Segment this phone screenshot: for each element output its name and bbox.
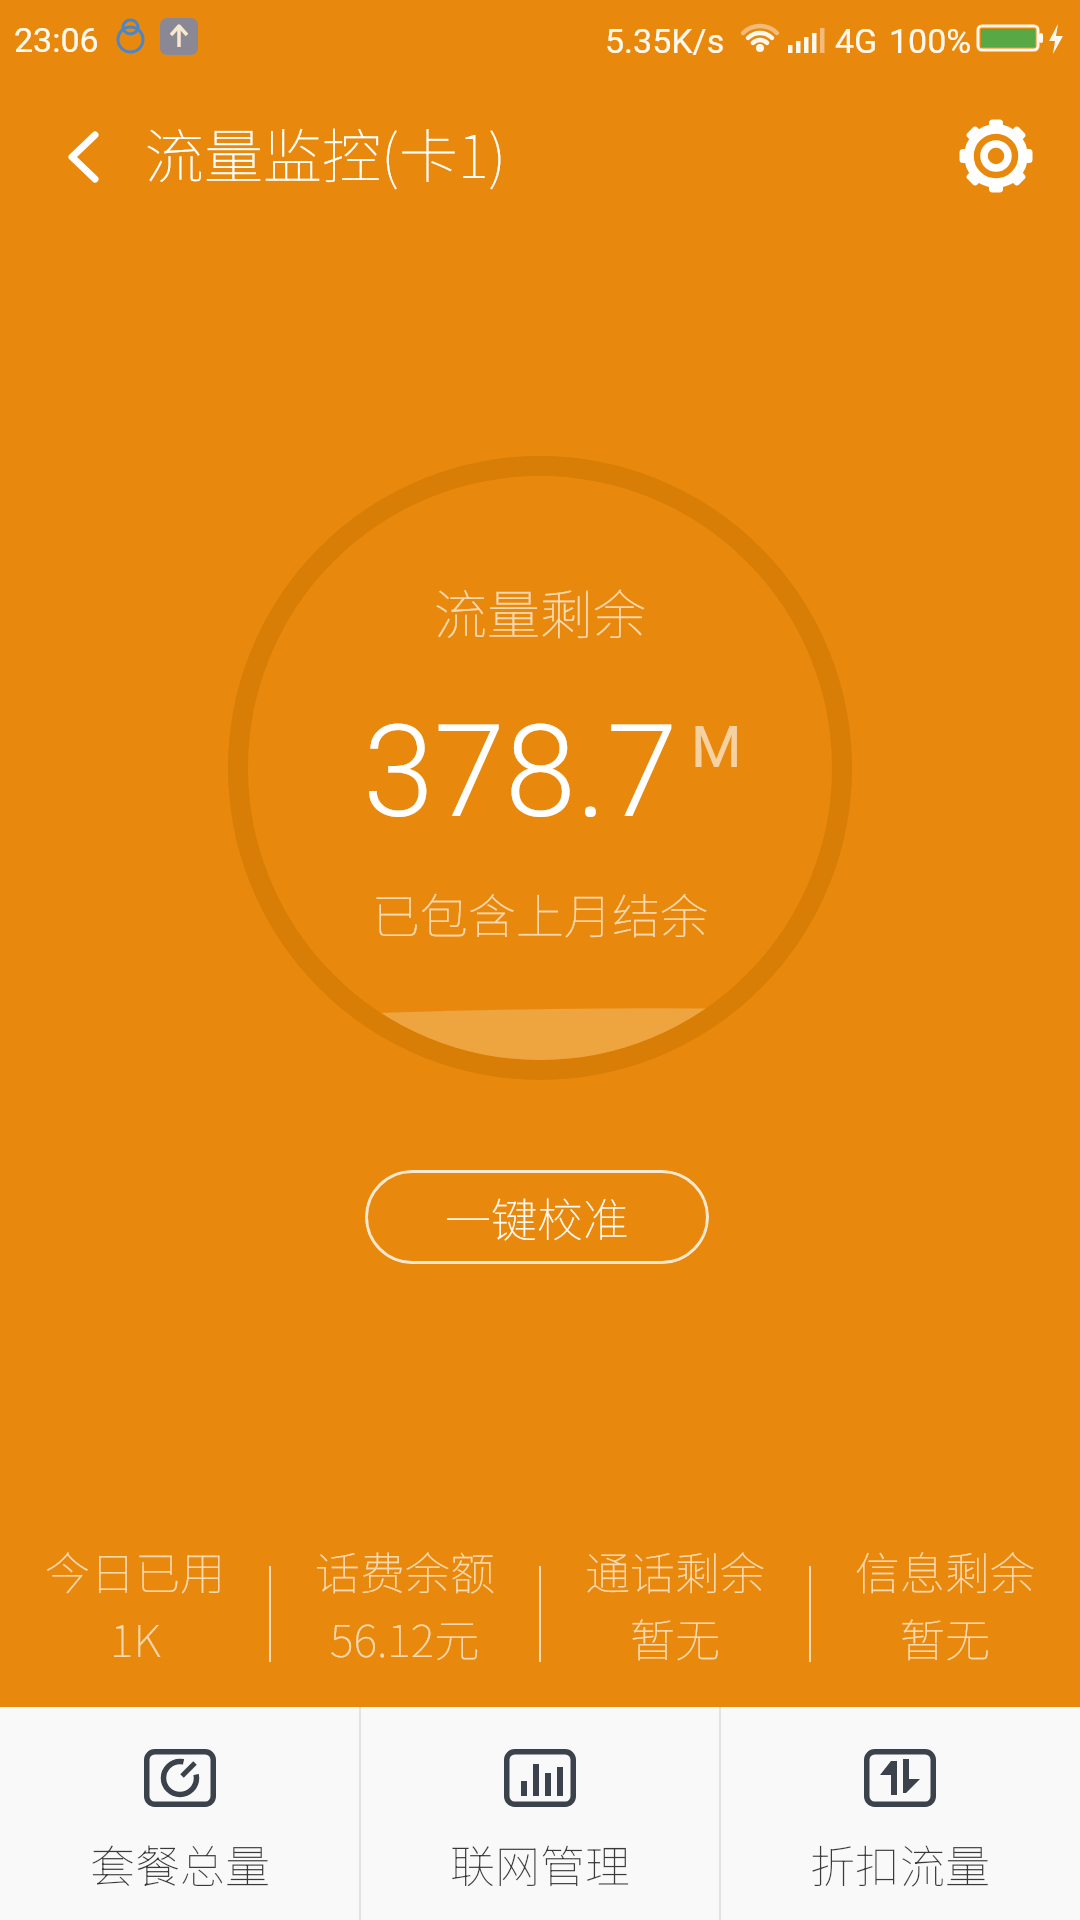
button[interactable] <box>952 112 1040 200</box>
staticText: 流量监控(卡1) <box>145 110 507 195</box>
staticText: 4G <box>835 21 878 61</box>
staticText: 信息剩余 <box>855 1538 1036 1603</box>
staticText: 1K <box>110 1605 161 1670</box>
staticText: 23:06 <box>14 20 99 60</box>
button[interactable]: 套餐总量 <box>0 1707 360 1920</box>
staticText: M <box>691 713 742 781</box>
staticText: 通话剩余 <box>585 1538 766 1603</box>
staticText: 今日已用 <box>45 1538 226 1603</box>
staticText: 暂无 <box>630 1605 721 1670</box>
staticText: 5.35K/s <box>605 21 725 61</box>
staticText: 一键校准 <box>445 1184 629 1251</box>
staticText: 已包含上月结余 <box>372 878 709 948</box>
staticText: 套餐总量 <box>90 1831 271 1896</box>
staticText: 流量剩余 <box>434 573 646 650</box>
staticText: 折扣流量 <box>810 1831 991 1896</box>
button[interactable]: 折扣流量 <box>720 1707 1080 1920</box>
staticText: 100% <box>889 21 972 61</box>
button[interactable] <box>40 115 130 205</box>
staticText: 话费余额 <box>315 1538 496 1603</box>
button[interactable]: 联网管理 <box>360 1707 720 1920</box>
staticText: 56.12元 <box>330 1605 480 1670</box>
staticText: 联网管理 <box>450 1831 631 1896</box>
staticText: 暂无 <box>900 1605 991 1670</box>
button[interactable]: 一键校准 <box>365 1170 709 1264</box>
staticText: 378.7 <box>363 697 678 847</box>
